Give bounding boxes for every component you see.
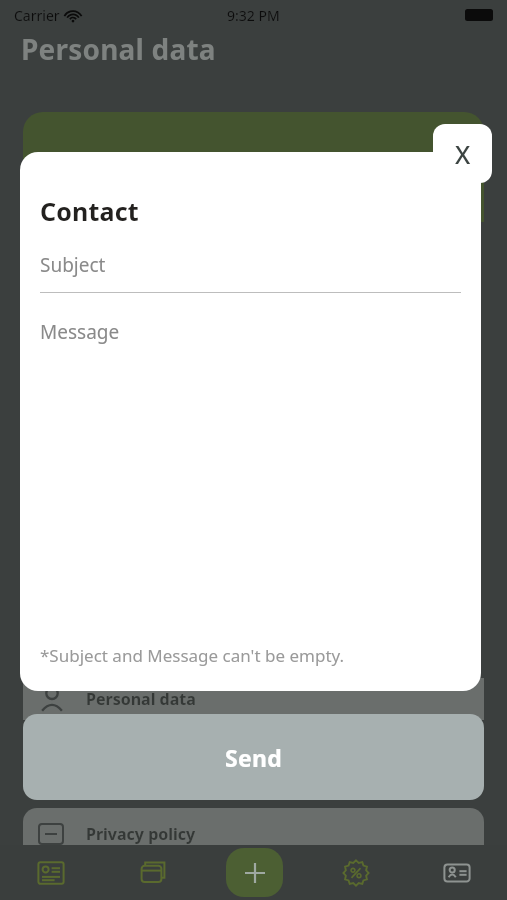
button[interactable]: Offers — [305, 845, 406, 900]
staticText: Send — [225, 742, 283, 773]
staticText: Message — [40, 319, 120, 345]
staticText: Subject — [40, 252, 106, 278]
staticText: 9:32 PM — [227, 6, 280, 25]
staticText: Personal data — [21, 30, 216, 68]
button[interactable]: Cards — [0, 845, 102, 900]
button[interactable]: Wallet — [102, 845, 204, 900]
button[interactable]: Subject — [40, 252, 461, 292]
button[interactable]: Personal data — [23, 678, 484, 720]
button[interactable]: Add — [204, 845, 305, 900]
button[interactable]: Profile — [406, 845, 507, 900]
staticText: Carrier — [14, 6, 60, 25]
button[interactable]: Close — [433, 124, 492, 183]
button[interactable]: Privacy policy — [23, 808, 484, 860]
staticText: Contact — [40, 194, 139, 228]
button[interactable]: Send — [23, 714, 484, 800]
staticText: Personal data — [86, 688, 196, 710]
staticText: *Subject and Message can't be empty. — [40, 644, 345, 667]
staticText: X — [455, 137, 471, 171]
button[interactable]: Message — [40, 319, 461, 599]
staticText: Privacy policy — [86, 823, 196, 845]
